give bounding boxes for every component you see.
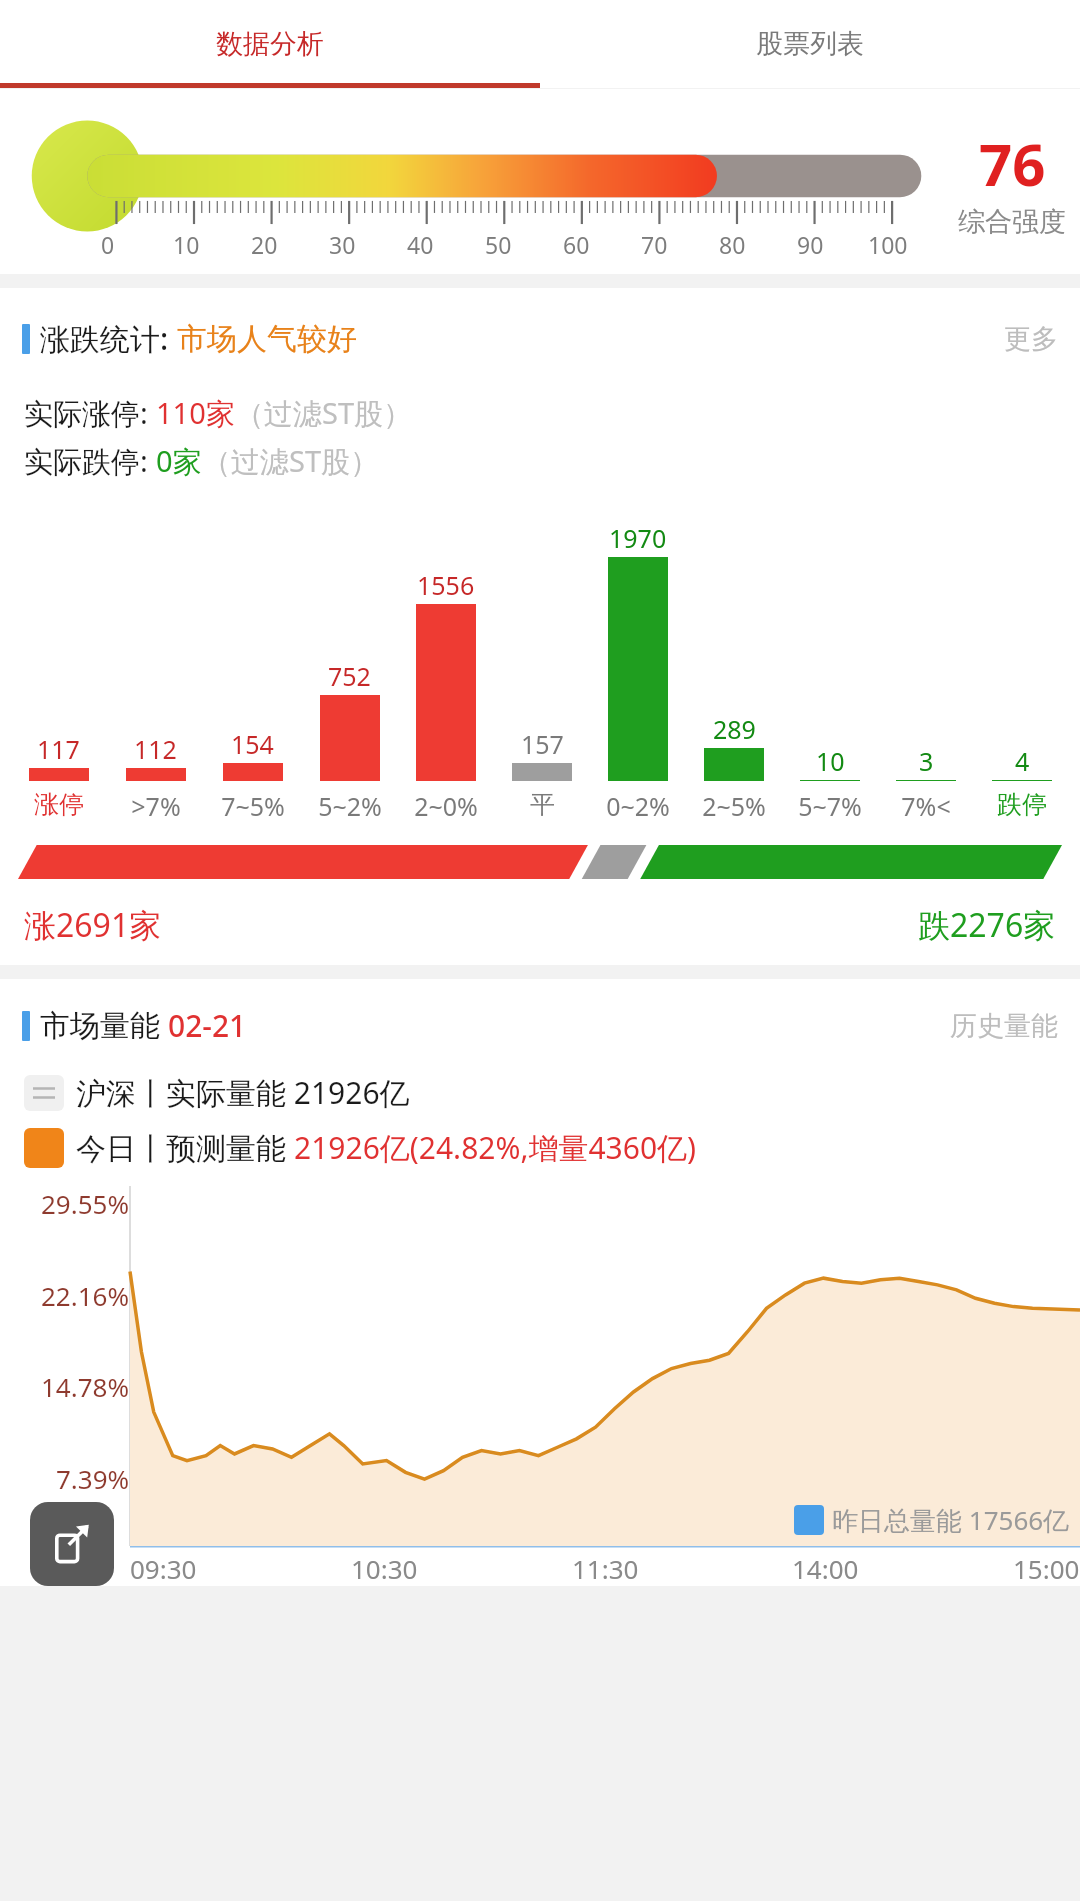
staticText: 14.78% bbox=[41, 1369, 130, 1404]
staticText: 14:00 bbox=[792, 1551, 859, 1586]
staticText: 7%< bbox=[901, 789, 951, 823]
staticText: 110家 bbox=[156, 393, 235, 433]
staticText: 1970 bbox=[609, 521, 667, 555]
staticText: 市场人气较好 bbox=[177, 320, 357, 358]
staticText: 涨停 bbox=[34, 789, 84, 820]
staticText: 涨跌统计: bbox=[40, 318, 169, 359]
staticText: 涨2691家 bbox=[24, 903, 162, 947]
button[interactable]: 数据分析 bbox=[0, 0, 540, 88]
staticText: 0家 bbox=[156, 441, 202, 481]
staticText: 更多 bbox=[1004, 322, 1058, 356]
staticText: 7.39% bbox=[56, 1461, 130, 1496]
staticText: 1556 bbox=[417, 568, 475, 602]
staticText: 4 bbox=[1015, 744, 1030, 778]
staticText: 沪深丨实际量能 21926亿 bbox=[76, 1072, 410, 1113]
staticText: 数据分析 bbox=[216, 27, 324, 61]
staticText: 历史量能 bbox=[950, 1009, 1058, 1043]
staticText: 70 bbox=[641, 229, 668, 260]
staticText: 100 bbox=[868, 229, 908, 260]
staticText: >7% bbox=[131, 789, 181, 823]
staticText: 76 bbox=[979, 124, 1046, 203]
staticText: 实际涨停: bbox=[24, 393, 156, 433]
staticText: 30 bbox=[329, 229, 356, 260]
staticText: 21926亿(24.82%,增量4360亿) bbox=[294, 1127, 697, 1168]
staticText: 90 bbox=[797, 229, 824, 260]
staticText: （过滤ST股） bbox=[235, 393, 413, 433]
button[interactable]: 历史量能 bbox=[950, 1009, 1058, 1043]
staticText: 112 bbox=[134, 732, 177, 766]
staticText: 5~2% bbox=[318, 789, 382, 823]
staticText: 20 bbox=[251, 229, 278, 260]
staticText: 10:30 bbox=[351, 1551, 418, 1586]
staticText: 752 bbox=[328, 659, 371, 693]
staticText: 09:30 bbox=[130, 1551, 197, 1586]
staticText: 2~0% bbox=[414, 789, 478, 823]
staticText: 平 bbox=[530, 789, 555, 820]
staticText: 0 bbox=[101, 229, 115, 260]
staticText: 50 bbox=[485, 229, 512, 260]
staticText: 昨日总量能 17566亿 bbox=[832, 1502, 1070, 1538]
staticText: 154 bbox=[231, 727, 274, 761]
staticText: 跌2276家 bbox=[918, 903, 1056, 947]
staticText: 60 bbox=[563, 229, 590, 260]
staticText: 10 bbox=[173, 229, 200, 260]
staticText: 市场量能 bbox=[40, 1007, 160, 1045]
staticText: 15:00 bbox=[1013, 1551, 1080, 1586]
staticText: 29.55% bbox=[41, 1186, 130, 1221]
staticText: 7~5% bbox=[221, 789, 285, 823]
button[interactable]: 股票列表 bbox=[540, 0, 1080, 88]
staticText: 跌停 bbox=[997, 789, 1047, 820]
staticText: 综合强度 bbox=[958, 205, 1066, 239]
staticText: 3 bbox=[919, 744, 934, 778]
staticText: 80 bbox=[719, 229, 746, 260]
staticText: 10 bbox=[816, 744, 845, 778]
staticText: 157 bbox=[521, 727, 564, 761]
staticText: 11:30 bbox=[572, 1551, 639, 1586]
button[interactable]: 更多 bbox=[1004, 322, 1058, 356]
staticText: 02-21 bbox=[168, 1005, 247, 1046]
staticText: 今日丨预测量能 bbox=[76, 1127, 294, 1168]
button[interactable]: 分享 bbox=[30, 1502, 114, 1586]
staticText: 117 bbox=[37, 732, 80, 766]
staticText: （过滤ST股） bbox=[202, 441, 380, 481]
staticText: 2~5% bbox=[702, 789, 766, 823]
staticText: 股票列表 bbox=[756, 27, 864, 61]
staticText: 22.16% bbox=[41, 1278, 130, 1313]
staticText: 0~2% bbox=[606, 789, 670, 823]
staticText: 40 bbox=[407, 229, 434, 260]
staticText: 5~7% bbox=[798, 789, 862, 823]
staticText: 实际跌停: bbox=[24, 441, 156, 481]
staticText: 289 bbox=[713, 712, 756, 746]
